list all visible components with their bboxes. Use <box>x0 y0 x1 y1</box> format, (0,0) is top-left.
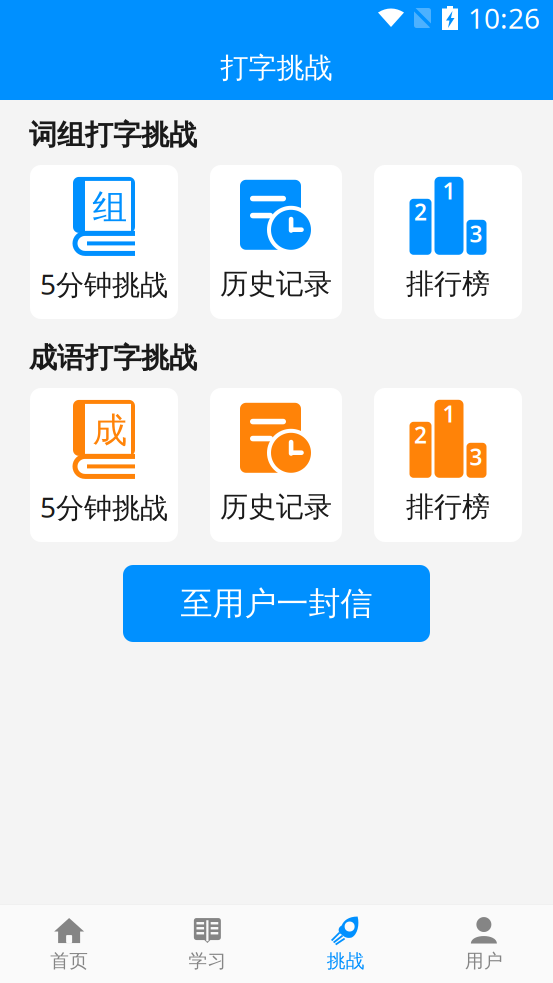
staticText: 1 <box>442 399 455 429</box>
button[interactable]: 挑战 <box>276 905 415 983</box>
staticText: 3 <box>469 219 482 249</box>
staticText: 词组打字挑战 <box>29 118 197 152</box>
staticText: 5分钟挑战 <box>40 488 168 526</box>
staticText: 学习 <box>188 949 226 972</box>
button[interactable]: 学习 <box>138 905 276 983</box>
staticText: 5分钟挑战 <box>40 265 168 303</box>
staticText: 2 <box>414 420 427 450</box>
button[interactable]: 历史记录 <box>210 388 342 542</box>
button[interactable]: 首页 <box>0 905 138 983</box>
button[interactable]: 历史记录 <box>210 165 342 319</box>
button[interactable]: 用户 <box>415 905 553 983</box>
staticText: 历史记录 <box>220 490 332 524</box>
staticText: 排行榜 <box>406 267 490 301</box>
staticText: 至用户一封信 <box>180 584 372 623</box>
staticText: 成语打字挑战 <box>29 341 197 375</box>
button[interactable]: 2 <box>374 165 522 319</box>
button[interactable]: 成 <box>30 388 178 542</box>
button[interactable]: 2 <box>374 388 522 542</box>
staticText: 10:26 <box>468 0 540 37</box>
staticText: 组 <box>92 186 127 229</box>
staticText: 2 <box>414 197 427 227</box>
staticText: 挑战 <box>327 949 365 972</box>
staticText: 用户 <box>465 949 503 972</box>
staticText: 1 <box>442 176 455 206</box>
staticText: 成 <box>92 409 127 452</box>
staticText: 3 <box>469 442 482 472</box>
staticText: 排行榜 <box>406 490 490 524</box>
staticText: 首页 <box>50 949 88 972</box>
button[interactable]: 组 <box>30 165 178 319</box>
staticText: 打字挑战 <box>220 51 332 85</box>
button[interactable]: 至用户一封信 <box>123 565 430 642</box>
staticText: 历史记录 <box>220 267 332 301</box>
